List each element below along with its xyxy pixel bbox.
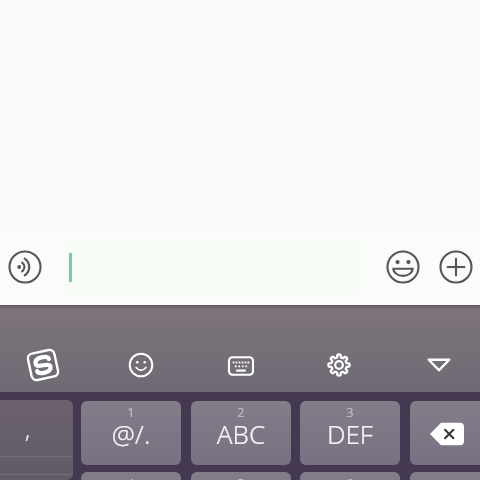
button[interactable]: Keyboard layout	[217, 342, 265, 390]
button[interactable]: 2	[191, 401, 291, 465]
button[interactable]: Hide keyboard	[415, 341, 463, 389]
button[interactable]: More	[433, 244, 478, 289]
button[interactable]: 3	[300, 401, 400, 465]
button[interactable]: 6	[300, 472, 400, 480]
button[interactable]: 5	[191, 472, 291, 480]
staticText: ,	[25, 414, 30, 444]
button[interactable]: ,	[0, 400, 73, 456]
button[interactable]: 4	[81, 472, 181, 480]
staticText: 3	[300, 404, 400, 420]
staticText: DEF	[300, 416, 400, 451]
staticText: 6	[300, 475, 400, 480]
button[interactable]: Stickers	[117, 341, 165, 389]
button[interactable]: Backspace	[410, 401, 480, 465]
staticText: 1	[81, 404, 181, 420]
button[interactable]: Settings	[315, 341, 363, 389]
button[interactable]: Voice message	[2, 244, 47, 289]
button[interactable]: Emoji	[380, 244, 425, 289]
button[interactable]	[62, 239, 362, 295]
button[interactable]	[410, 472, 480, 480]
staticText: @/.	[81, 416, 181, 451]
button[interactable]: Sogou input	[19, 341, 67, 389]
staticText: ABC	[191, 416, 291, 451]
staticText: 4	[81, 475, 181, 480]
staticText: 2	[191, 404, 291, 420]
button[interactable]: 1	[81, 401, 181, 465]
staticText: 5	[191, 475, 291, 480]
